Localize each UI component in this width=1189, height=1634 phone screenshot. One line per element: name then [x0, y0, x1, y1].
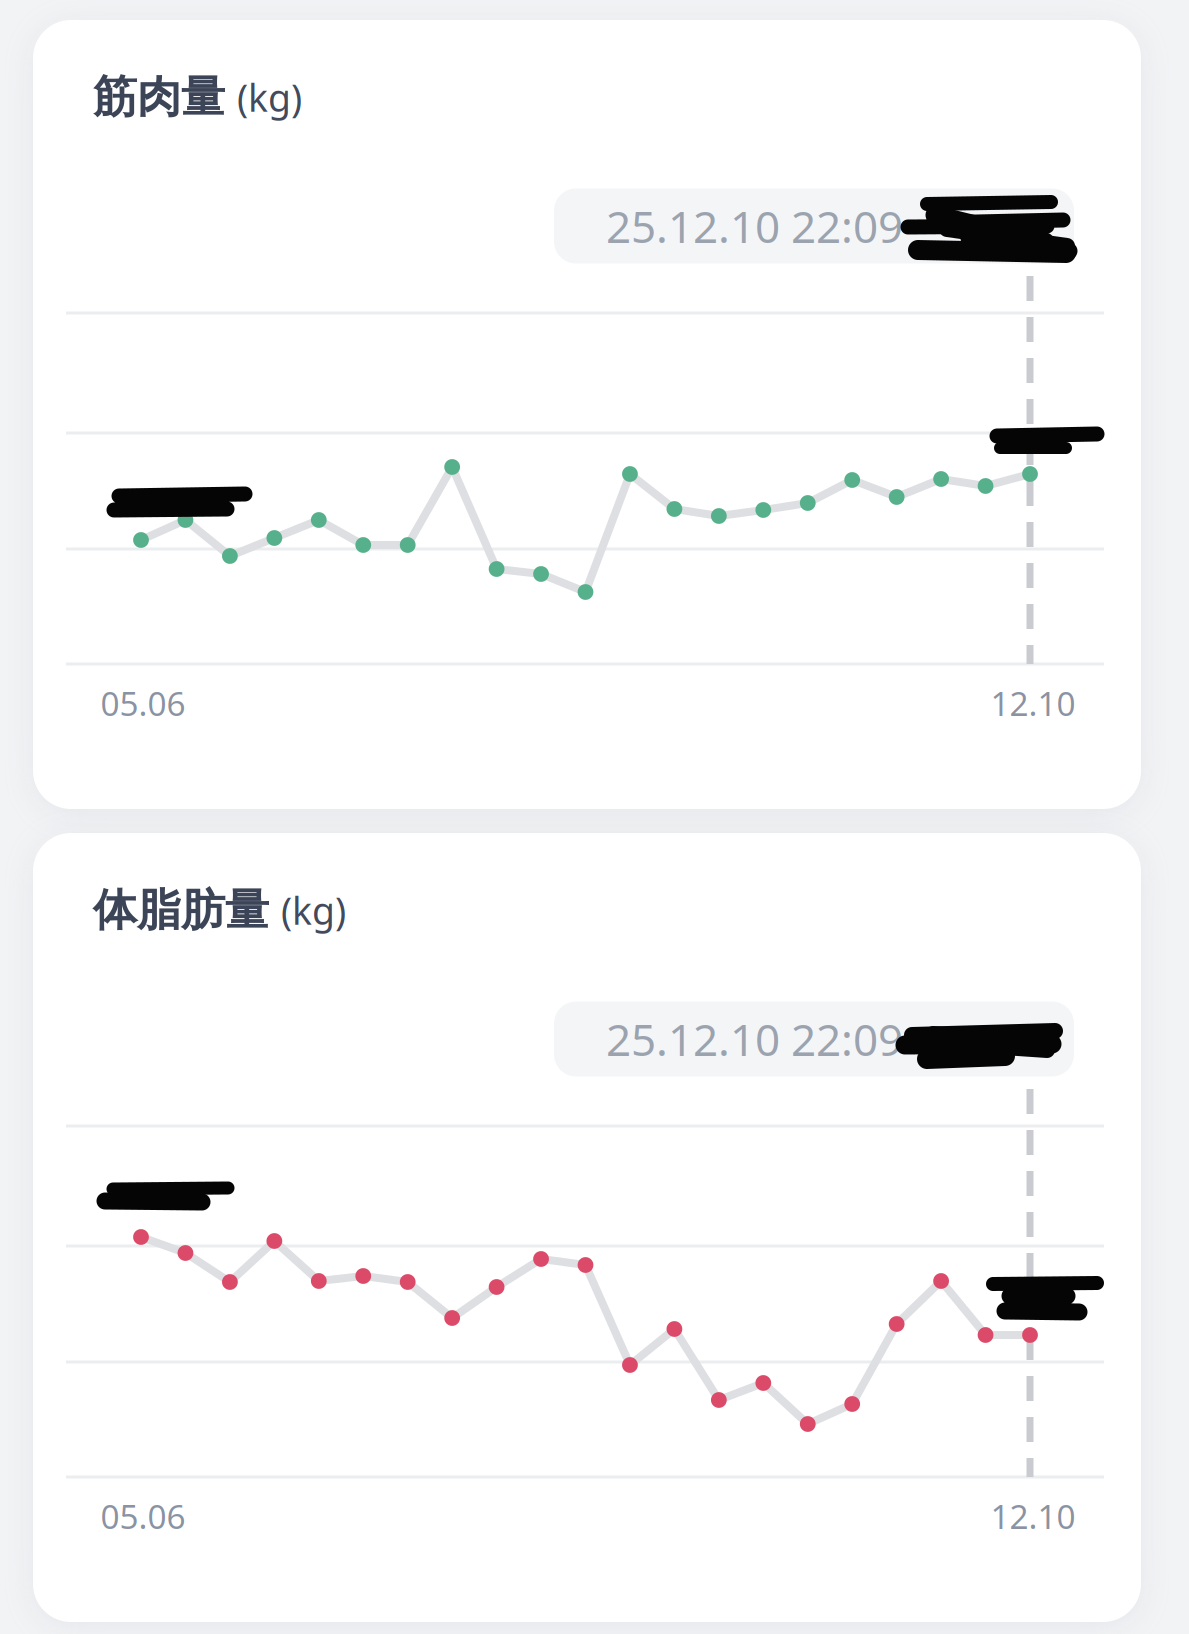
- staticText: 05.06: [100, 1494, 185, 1538]
- button[interactable]: 筋肉量: [33, 20, 1141, 809]
- staticText: 12.10: [990, 681, 1075, 725]
- button[interactable]: 体脂肪量: [33, 833, 1141, 1622]
- staticText: 筋肉量: [93, 70, 225, 124]
- staticText: 25.12.10 22:09: [606, 197, 903, 255]
- staticText: (kg): [281, 885, 346, 935]
- staticText: 体脂肪量: [93, 883, 269, 937]
- staticText: 05.06: [100, 681, 185, 725]
- staticText: (kg): [237, 72, 302, 122]
- staticText: 25.12.10 22:09: [606, 1010, 903, 1068]
- staticText: 12.10: [990, 1494, 1075, 1538]
